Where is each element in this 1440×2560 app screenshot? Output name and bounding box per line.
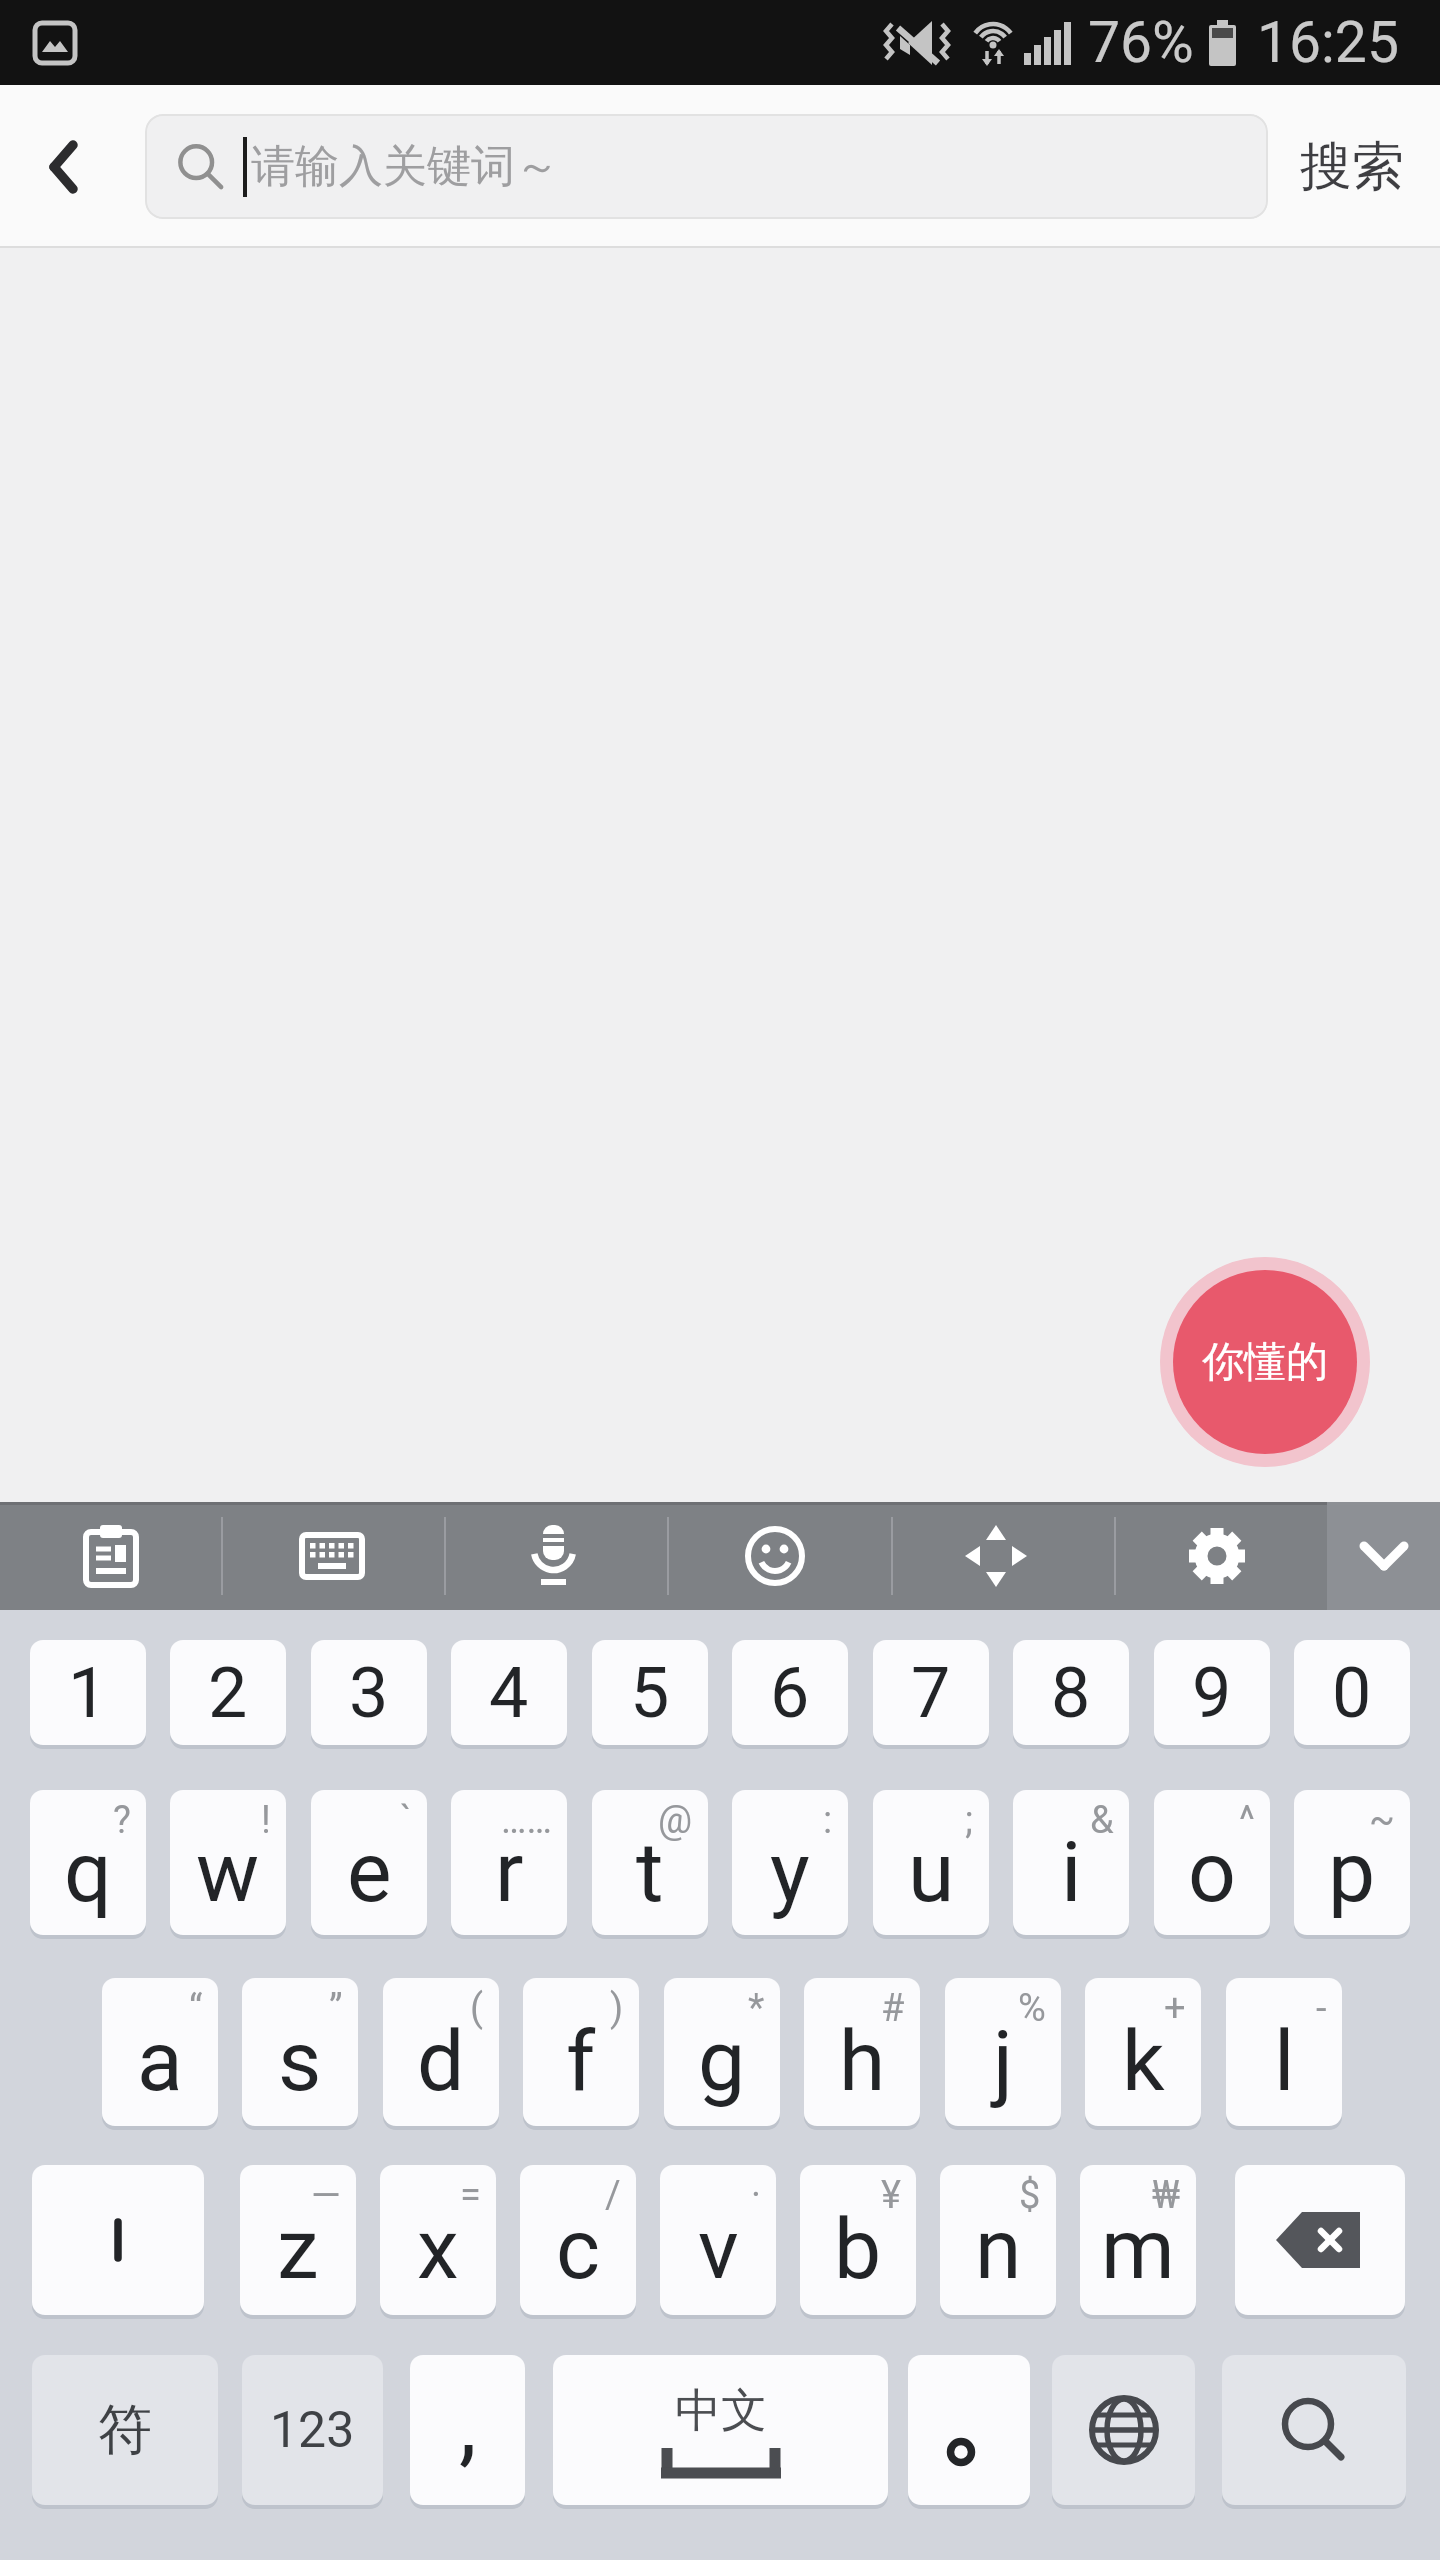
- staticText: v: [698, 2200, 739, 2298]
- button[interactable]: [885, 1502, 1106, 1610]
- button[interactable]: c: [520, 2165, 636, 2315]
- staticText: ?: [113, 1798, 131, 1843]
- button[interactable]: z: [240, 2165, 356, 2315]
- button[interactable]: 5: [592, 1640, 708, 1745]
- button[interactable]: q: [30, 1790, 146, 1935]
- button[interactable]: 3: [311, 1640, 427, 1745]
- button[interactable]: g: [664, 1978, 780, 2126]
- staticText: (: [470, 1986, 484, 2031]
- button[interactable]: [1222, 2355, 1406, 2505]
- button[interactable]: [1106, 1502, 1327, 1610]
- button[interactable]: u: [873, 1790, 989, 1935]
- staticText: b: [834, 2200, 882, 2298]
- button[interactable]: w: [170, 1790, 286, 1935]
- button[interactable]: s: [242, 1978, 358, 2126]
- button[interactable]: [442, 1502, 663, 1610]
- button[interactable]: [32, 2165, 204, 2315]
- button[interactable]: 8: [1013, 1640, 1129, 1745]
- staticText: *: [748, 1986, 765, 2031]
- button[interactable]: [221, 1502, 442, 1610]
- staticText: n: [975, 2200, 1022, 2298]
- staticText: 7: [911, 1652, 951, 1734]
- staticText: &: [1090, 1798, 1114, 1843]
- button[interactable]: o: [1154, 1790, 1270, 1935]
- button[interactable]: x: [380, 2165, 496, 2315]
- button[interactable]: i: [1013, 1790, 1129, 1935]
- staticText: $: [1019, 2173, 1041, 2218]
- button[interactable]: f: [523, 1978, 639, 2126]
- button[interactable]: r: [451, 1790, 567, 1935]
- button[interactable]: 请输入关键词～: [145, 114, 1268, 219]
- button[interactable]: [908, 2355, 1030, 2505]
- button[interactable]: 6: [732, 1640, 848, 1745]
- button[interactable]: j: [945, 1978, 1061, 2126]
- button[interactable]: b: [800, 2165, 916, 2315]
- button[interactable]: t: [592, 1790, 708, 1935]
- button[interactable]: ,: [410, 2355, 525, 2505]
- staticText: —: [311, 2173, 341, 2218]
- staticText: ~: [1369, 1798, 1395, 1843]
- staticText: e: [347, 1823, 392, 1921]
- button[interactable]: v: [660, 2165, 776, 2315]
- button[interactable]: d: [383, 1978, 499, 2126]
- staticText: ,: [459, 2372, 477, 2477]
- staticText: #: [881, 1986, 905, 2031]
- staticText: h: [839, 2012, 886, 2110]
- button[interactable]: h: [804, 1978, 920, 2126]
- button[interactable]: 中文: [553, 2355, 888, 2505]
- button[interactable]: 符: [32, 2355, 218, 2505]
- button[interactable]: 4: [451, 1640, 567, 1745]
- button[interactable]: 9: [1154, 1640, 1270, 1745]
- button[interactable]: k: [1085, 1978, 1201, 2126]
- button[interactable]: y: [732, 1790, 848, 1935]
- button[interactable]: [1235, 2165, 1405, 2315]
- staticText: !: [261, 1798, 271, 1843]
- staticText: l: [1274, 2012, 1295, 2110]
- button[interactable]: [1327, 1502, 1440, 1610]
- button[interactable]: l: [1226, 1978, 1342, 2126]
- button[interactable]: 1: [30, 1640, 146, 1745]
- staticText: p: [1328, 1823, 1376, 1921]
- staticText: 符: [98, 2396, 152, 2464]
- staticText: -: [1316, 1986, 1327, 2031]
- staticText: ¥: [881, 2173, 901, 2218]
- button[interactable]: 123: [242, 2355, 383, 2505]
- staticText: 4: [489, 1652, 529, 1734]
- button[interactable]: [0, 1502, 221, 1610]
- staticText: z: [277, 2200, 319, 2298]
- button[interactable]: [1052, 2355, 1195, 2505]
- button[interactable]: n: [940, 2165, 1056, 2315]
- staticText: w: [196, 1823, 260, 1921]
- staticText: j: [993, 2012, 1014, 2110]
- staticText: q: [64, 1823, 112, 1921]
- staticText: 2: [208, 1652, 248, 1734]
- staticText: =: [460, 2173, 481, 2218]
- button[interactable]: m: [1080, 2165, 1196, 2315]
- staticText: c: [556, 2200, 600, 2298]
- button[interactable]: 你懂的: [1160, 1257, 1370, 1467]
- staticText: i: [1061, 1823, 1082, 1921]
- button[interactable]: 搜索: [1300, 134, 1404, 200]
- staticText: ……: [501, 1798, 552, 1843]
- staticText: s: [278, 2012, 322, 2110]
- staticText: :: [823, 1798, 833, 1843]
- button[interactable]: [45, 139, 81, 195]
- staticText: x: [417, 2200, 459, 2298]
- staticText: 1: [68, 1652, 108, 1734]
- button[interactable]: 0: [1294, 1640, 1410, 1745]
- staticText: /: [605, 2173, 621, 2218]
- button[interactable]: e: [311, 1790, 427, 1935]
- button[interactable]: 2: [170, 1640, 286, 1745]
- button[interactable]: a: [102, 1978, 218, 2126]
- button[interactable]: [664, 1502, 885, 1610]
- staticText: ”: [329, 1986, 343, 2031]
- button[interactable]: p: [1294, 1790, 1410, 1935]
- staticText: m: [1101, 2200, 1175, 2298]
- button[interactable]: 7: [873, 1640, 989, 1745]
- staticText: d: [417, 2012, 465, 2110]
- staticText: o: [1188, 1823, 1236, 1921]
- staticText: 8: [1051, 1652, 1091, 1734]
- staticText: ^: [1239, 1798, 1255, 1843]
- staticText: 9: [1192, 1652, 1232, 1734]
- staticText: 123: [270, 2401, 355, 2460]
